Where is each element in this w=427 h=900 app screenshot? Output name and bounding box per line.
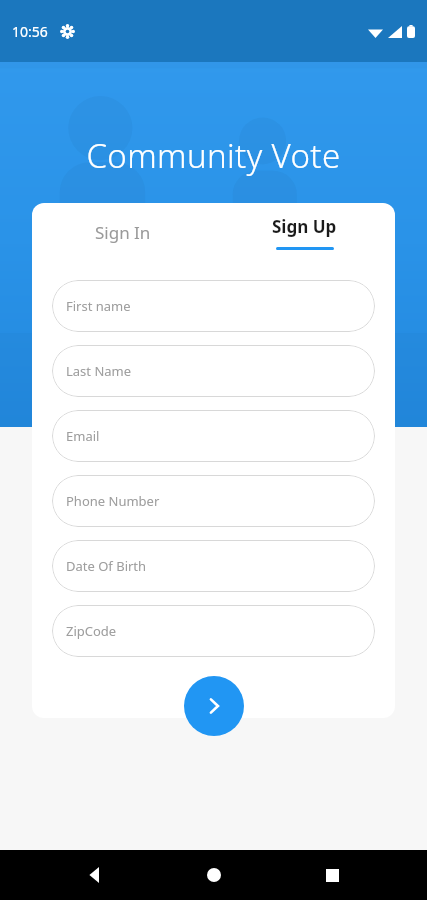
staticText: ZipCode (66, 622, 117, 640)
staticText: 10:56 (12, 22, 48, 41)
button[interactable]: Date Of Birth (52, 540, 375, 592)
button[interactable]: First name (52, 280, 375, 332)
staticText: Sign In (95, 221, 151, 244)
staticText: Phone Number (66, 492, 160, 510)
staticText: Email (66, 427, 100, 445)
button[interactable]: Sign Up (213, 203, 395, 261)
button[interactable]: Recents (308, 851, 356, 899)
button[interactable]: Next (184, 676, 244, 736)
staticText: Sign Up (272, 215, 337, 238)
button[interactable]: Back (71, 851, 119, 899)
button[interactable]: Home (190, 851, 238, 899)
button[interactable]: Last Name (52, 345, 375, 397)
staticText: Date Of Birth (66, 557, 147, 575)
button[interactable]: Sign In (32, 203, 213, 261)
staticText: Community Vote (86, 133, 341, 178)
staticText: First name (66, 297, 131, 315)
button[interactable]: Email (52, 410, 375, 462)
button[interactable]: ZipCode (52, 605, 375, 657)
staticText: Last Name (66, 362, 132, 380)
button[interactable]: Phone Number (52, 475, 375, 527)
